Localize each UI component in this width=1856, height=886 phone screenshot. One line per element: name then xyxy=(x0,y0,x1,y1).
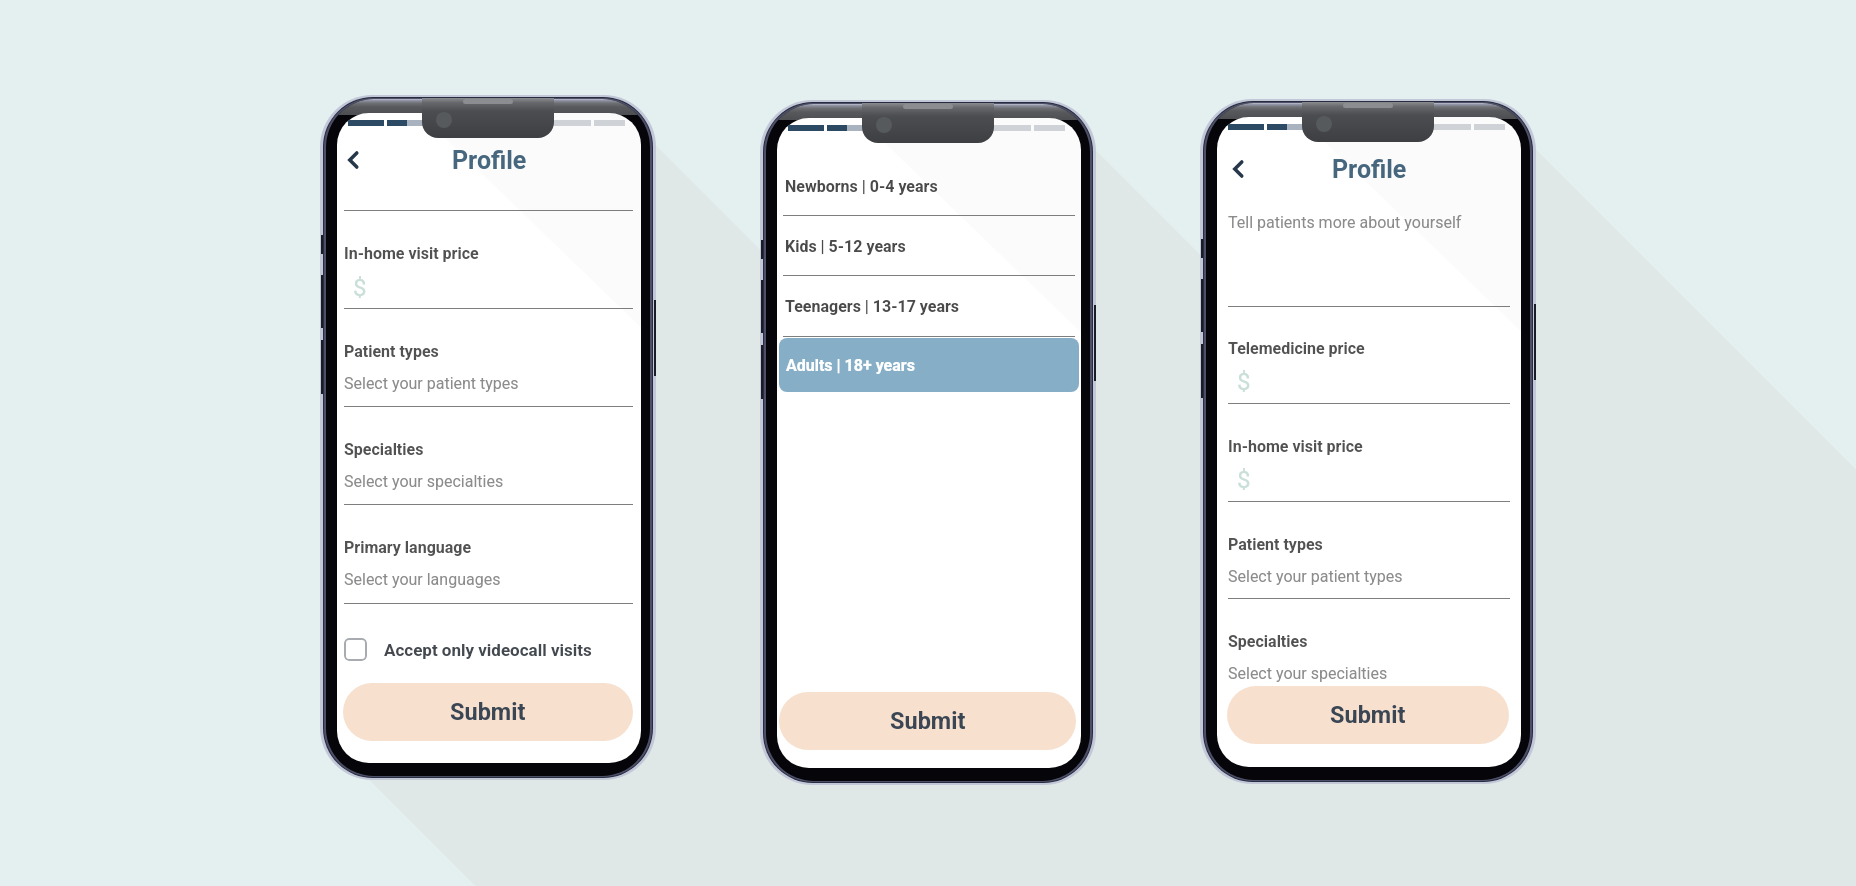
staticText: Select your specialties xyxy=(1228,664,1388,683)
staticText: In-home visit price xyxy=(344,244,479,263)
staticText: Select your patient types xyxy=(344,374,519,393)
staticText: $ xyxy=(1237,368,1251,396)
staticText: Profile xyxy=(1332,155,1407,184)
staticText: In-home visit price xyxy=(1228,437,1363,456)
staticText: Adults | 18+ years xyxy=(786,356,915,375)
staticText: Accept only videocall visits xyxy=(384,640,592,660)
staticText: Select your patient types xyxy=(1228,567,1403,586)
staticText: Submit xyxy=(450,698,526,726)
button[interactable]: Teenagers | 13-17 years xyxy=(783,281,1075,331)
staticText: Select your specialties xyxy=(344,472,504,491)
staticText: Specialties xyxy=(1228,632,1308,651)
staticText: Tell patients more about yourself xyxy=(1228,213,1462,232)
button[interactable]: Submit xyxy=(1227,686,1509,744)
button[interactable]: Back xyxy=(337,138,374,182)
button[interactable]: Submit xyxy=(343,683,633,741)
button[interactable]: Adults | 18+ years xyxy=(779,338,1079,392)
staticText: Patient types xyxy=(1228,535,1323,554)
staticText: Profile xyxy=(452,146,527,175)
button[interactable]: Newborns | 0-4 years xyxy=(783,161,1075,211)
staticText: Submit xyxy=(1330,701,1406,729)
staticText: Telemedicine price xyxy=(1228,339,1365,358)
staticText: Select your languages xyxy=(344,570,501,589)
staticText: Submit xyxy=(890,707,966,735)
button[interactable]: Accept only videocall visits xyxy=(344,638,592,661)
staticText: $ xyxy=(1237,466,1251,494)
staticText: Teenagers | 13-17 years xyxy=(785,297,960,316)
staticText: Primary language xyxy=(344,538,472,557)
button[interactable]: Back xyxy=(1217,147,1259,191)
button[interactable]: Submit xyxy=(779,692,1076,750)
staticText: Newborns | 0-4 years xyxy=(785,177,938,196)
staticText: $ xyxy=(353,274,367,302)
staticText: Patient types xyxy=(344,342,439,361)
staticText: Kids | 5-12 years xyxy=(785,237,906,256)
button[interactable]: Kids | 5-12 years xyxy=(783,221,1075,271)
staticText: Specialties xyxy=(344,440,424,459)
